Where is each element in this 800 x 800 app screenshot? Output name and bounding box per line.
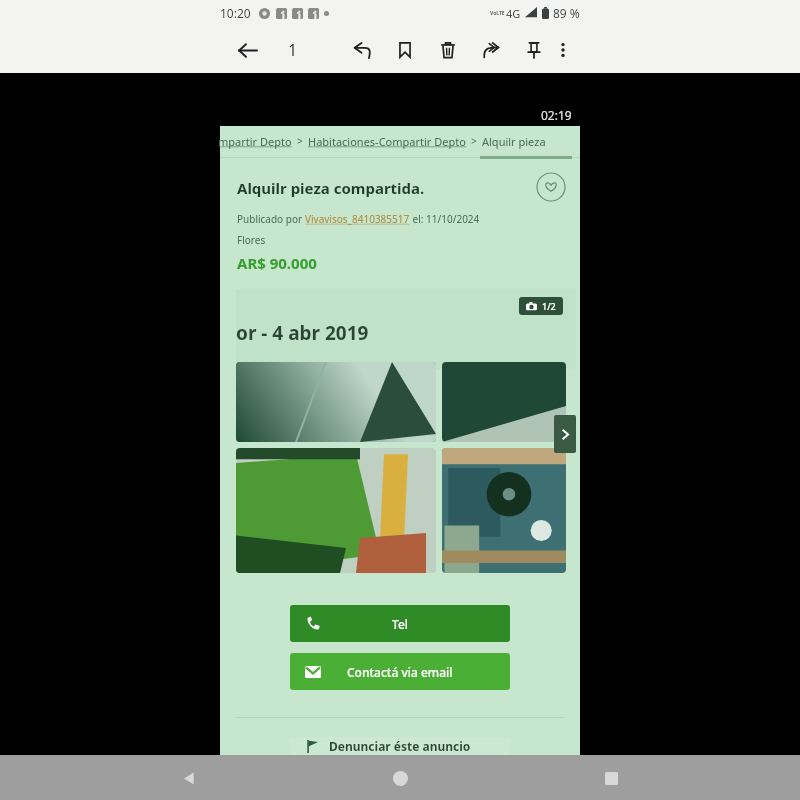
button[interactable]: Denunciar éste anuncio (290, 737, 510, 755)
button[interactable]: mpartir Depto (218, 134, 292, 149)
button[interactable]: Next photo (554, 415, 576, 453)
button[interactable] (442, 448, 566, 573)
button[interactable]: Recent apps (589, 756, 633, 800)
button[interactable]: Back (232, 35, 262, 65)
button[interactable]: Add to favourites (536, 172, 566, 202)
button[interactable] (236, 448, 436, 573)
button[interactable]: More options (550, 35, 576, 65)
staticText: Contactá via email (347, 664, 453, 680)
button[interactable]: Habitaciones-Compartir Depto (308, 134, 466, 149)
button[interactable]: Tel (290, 605, 510, 642)
button[interactable]: Vivavisos_8410385517 (305, 212, 410, 226)
button[interactable]: 1/2 (526, 300, 556, 312)
staticText: 1/2 (542, 300, 556, 312)
button[interactable]: Pin (518, 34, 550, 66)
staticText: Alquilr pieza compartida. (482, 134, 578, 149)
button[interactable]: Forward (475, 34, 507, 66)
button[interactable]: Contactá via email (290, 653, 510, 690)
button[interactable] (236, 362, 436, 442)
staticText: el: 11/10/2024 (410, 212, 480, 226)
staticText: 89 % (553, 5, 580, 21)
button[interactable]: Back (167, 756, 211, 800)
staticText: > (297, 134, 303, 148)
button[interactable]: Delete (432, 34, 464, 66)
staticText: > (471, 134, 477, 148)
staticText: 4G (506, 6, 521, 21)
staticText: or - 4 abr 2019 (236, 320, 369, 346)
staticText: 1 (288, 39, 298, 61)
staticText: Tel (392, 616, 409, 632)
button[interactable]: Reply (346, 34, 378, 66)
staticText: Flores (237, 233, 266, 247)
staticText: Alquilr pieza compartida. (237, 178, 425, 198)
staticText: 10:20 (220, 5, 251, 21)
button[interactable]: Bookmark (389, 34, 421, 66)
staticText: VoLTE (490, 10, 505, 17)
staticText: AR$ 90.000 (237, 253, 317, 273)
button[interactable] (442, 362, 566, 442)
button[interactable]: Home (378, 756, 422, 800)
staticText: Publicado por (237, 212, 305, 226)
staticText: 02:19 (541, 107, 572, 123)
staticText: Denunciar éste anuncio (329, 738, 471, 754)
